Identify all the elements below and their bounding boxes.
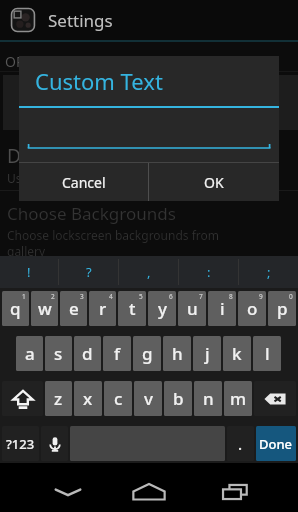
staticText: Use custom text bbox=[7, 170, 98, 186]
staticText: x bbox=[83, 387, 93, 410]
staticText: ? bbox=[86, 263, 92, 281]
staticText: 7 bbox=[199, 292, 203, 301]
staticText: OK bbox=[204, 173, 224, 192]
staticText: 2 bbox=[51, 292, 55, 301]
staticText: j bbox=[205, 342, 210, 365]
staticText: s bbox=[54, 342, 63, 365]
other: App icon bbox=[10, 7, 36, 33]
button[interactable]: f bbox=[103, 336, 131, 371]
button[interactable]: d bbox=[74, 336, 101, 371]
staticText: k bbox=[232, 342, 242, 365]
staticText: , bbox=[147, 263, 151, 281]
staticText: 8 bbox=[229, 292, 233, 301]
staticText: a bbox=[25, 342, 35, 365]
button[interactable]: h bbox=[163, 336, 191, 371]
staticText: ! bbox=[27, 263, 31, 281]
button[interactable]: a bbox=[16, 336, 43, 371]
button[interactable]: Home bbox=[119, 471, 179, 512]
button[interactable]: , bbox=[119, 256, 178, 288]
button[interactable]: Done bbox=[256, 426, 296, 461]
button[interactable]: w bbox=[31, 291, 58, 326]
staticText: w bbox=[38, 297, 52, 320]
button[interactable]: u bbox=[178, 291, 206, 326]
button[interactable]: e bbox=[60, 291, 87, 326]
staticText: : bbox=[207, 263, 211, 281]
button[interactable]: g bbox=[133, 336, 161, 371]
button[interactable]: j bbox=[193, 336, 221, 371]
button[interactable]: App icon bbox=[0, 0, 298, 40]
staticText: . bbox=[238, 434, 243, 454]
button[interactable]: Recent apps bbox=[202, 471, 262, 512]
staticText: p bbox=[277, 297, 288, 320]
staticText: Display Settings bbox=[7, 143, 150, 169]
staticText: 4 bbox=[109, 292, 113, 301]
button[interactable]: l bbox=[253, 336, 281, 371]
button[interactable]: r bbox=[89, 291, 116, 326]
button[interactable]: c bbox=[104, 381, 132, 416]
staticText: Custom Text bbox=[35, 66, 163, 96]
staticText: r bbox=[99, 297, 107, 320]
button[interactable]: m bbox=[224, 381, 252, 416]
button[interactable]: Voice input bbox=[41, 426, 68, 461]
button[interactable]: i bbox=[208, 291, 236, 326]
staticText: t bbox=[129, 297, 136, 320]
staticText: h bbox=[172, 342, 183, 365]
button[interactable]: s bbox=[45, 336, 72, 371]
staticText: y bbox=[158, 297, 167, 320]
staticText: v bbox=[144, 387, 153, 410]
button[interactable]: ; bbox=[239, 256, 298, 288]
button[interactable]: q bbox=[2, 291, 29, 326]
button[interactable]: ?123 bbox=[2, 426, 39, 461]
button[interactable]: p bbox=[268, 291, 296, 326]
button[interactable]: x bbox=[74, 381, 102, 416]
staticText: n bbox=[203, 387, 214, 410]
staticText: 3 bbox=[80, 292, 84, 301]
button[interactable]: . bbox=[227, 426, 254, 461]
button[interactable]: Shift bbox=[2, 381, 43, 416]
staticText: ; bbox=[267, 263, 271, 281]
staticText: b bbox=[173, 387, 184, 410]
staticText: OPTIONS bbox=[5, 52, 67, 71]
button[interactable]: v bbox=[134, 381, 162, 416]
button[interactable]: Cancel bbox=[19, 163, 148, 201]
button[interactable] bbox=[3, 75, 298, 130]
button[interactable]: n bbox=[194, 381, 222, 416]
staticText: 0 bbox=[289, 292, 293, 301]
staticText: q bbox=[10, 297, 21, 320]
staticText: i bbox=[220, 297, 225, 320]
button[interactable]: b bbox=[164, 381, 192, 416]
button[interactable]: y bbox=[148, 291, 176, 326]
button[interactable]: ? bbox=[59, 256, 118, 288]
staticText: ?123 bbox=[6, 435, 35, 453]
staticText: Choose Backgrounds bbox=[7, 202, 176, 225]
staticText: m bbox=[230, 387, 247, 410]
staticText: Settings bbox=[48, 9, 113, 32]
staticText: u bbox=[187, 297, 198, 320]
staticText: z bbox=[54, 387, 63, 410]
button[interactable]: : bbox=[179, 256, 238, 288]
staticText: 9 bbox=[259, 292, 263, 301]
staticText: g bbox=[142, 342, 153, 365]
button[interactable]: o bbox=[238, 291, 266, 326]
staticText: Done bbox=[259, 435, 293, 453]
button[interactable]: ! bbox=[0, 256, 58, 288]
staticText: c bbox=[114, 387, 123, 410]
staticText: Cancel bbox=[62, 173, 106, 192]
staticText: o bbox=[247, 297, 258, 320]
button[interactable]: Delete bbox=[254, 381, 296, 416]
staticText: 5 bbox=[139, 292, 143, 301]
staticText: 6 bbox=[169, 292, 173, 301]
staticText: Choose lockscreen backgrounds from galle… bbox=[7, 227, 220, 259]
button[interactable]: t bbox=[118, 291, 146, 326]
button[interactable]: OK bbox=[149, 163, 279, 201]
button[interactable]: k bbox=[223, 336, 251, 371]
staticText: e bbox=[69, 297, 79, 320]
staticText: f bbox=[114, 342, 121, 365]
button[interactable]: z bbox=[45, 381, 72, 416]
staticText: l bbox=[265, 342, 270, 365]
staticText: d bbox=[82, 342, 93, 365]
staticText: 1 bbox=[22, 292, 26, 301]
button[interactable]: Hide keyboard bbox=[38, 471, 98, 512]
